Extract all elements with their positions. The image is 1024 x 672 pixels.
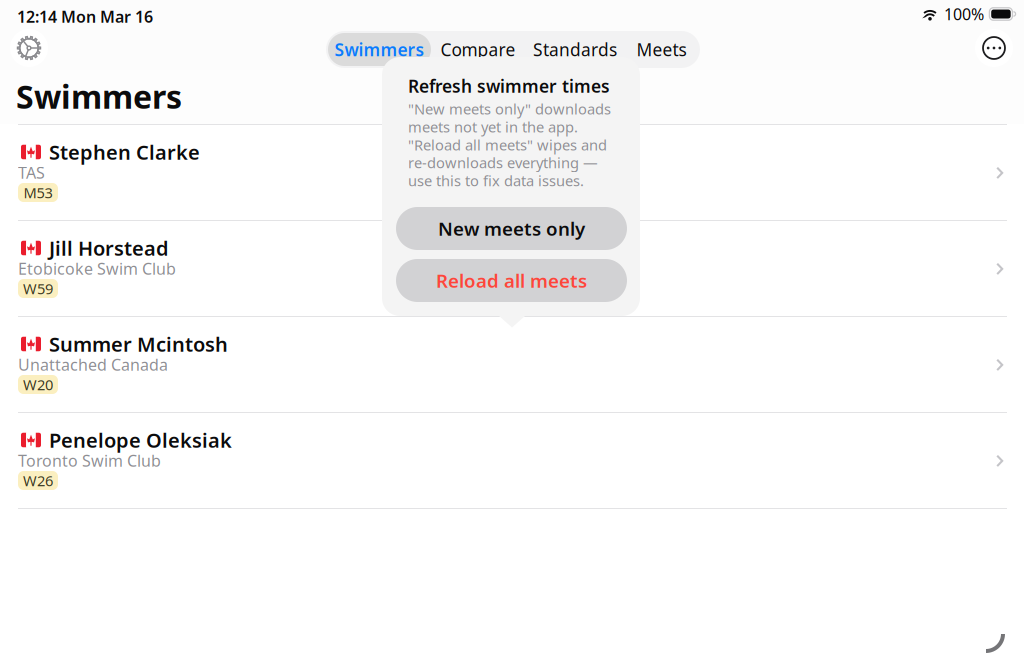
staticText: W20 [23,375,53,394]
staticText: Swimmers [334,38,424,61]
staticText: 12:14 [17,6,57,27]
button[interactable]: Settings [10,29,48,67]
staticText: Reload all meets [436,268,587,293]
button[interactable]: Compare [431,33,525,66]
button[interactable]: Stephen Clarke [0,125,1024,221]
staticText: Meets [636,38,686,61]
staticText: Jill Horstead [49,235,169,261]
button[interactable]: Standards [525,33,625,66]
staticText: Swimmers [16,75,182,117]
staticText: Summer Mcintosh [49,331,228,357]
staticText: Mon Mar 16 [61,6,153,27]
staticText: Etobicoke Swim Club [18,258,176,279]
staticText: W26 [23,471,53,490]
staticText: Refresh swimmer times [408,74,610,97]
staticText: Standards [533,38,617,61]
button[interactable]: Reload all meets [396,259,627,302]
staticText: Stephen Clarke [49,139,200,165]
button[interactable]: Meets [625,33,698,66]
button[interactable]: Summer Mcintosh [0,317,1024,413]
staticText: Compare [440,38,515,61]
staticText: 100% [944,3,984,25]
button[interactable]: More options [975,29,1013,67]
button[interactable]: New meets only [396,207,627,250]
button[interactable]: Penelope Oleksiak [0,413,1024,509]
staticText: New meets only [438,216,585,241]
staticText: "New meets only" downloads meets not yet… [408,99,611,190]
staticText: TAS [18,162,45,183]
staticText: Penelope Oleksiak [49,427,232,453]
staticText: Unattached Canada [18,354,168,375]
staticText: M53 [23,183,52,202]
staticText: Toronto Swim Club [18,450,161,471]
button[interactable]: Jill Horstead [0,221,1024,317]
button[interactable]: Swimmers [328,33,431,66]
staticText: W59 [23,279,53,298]
